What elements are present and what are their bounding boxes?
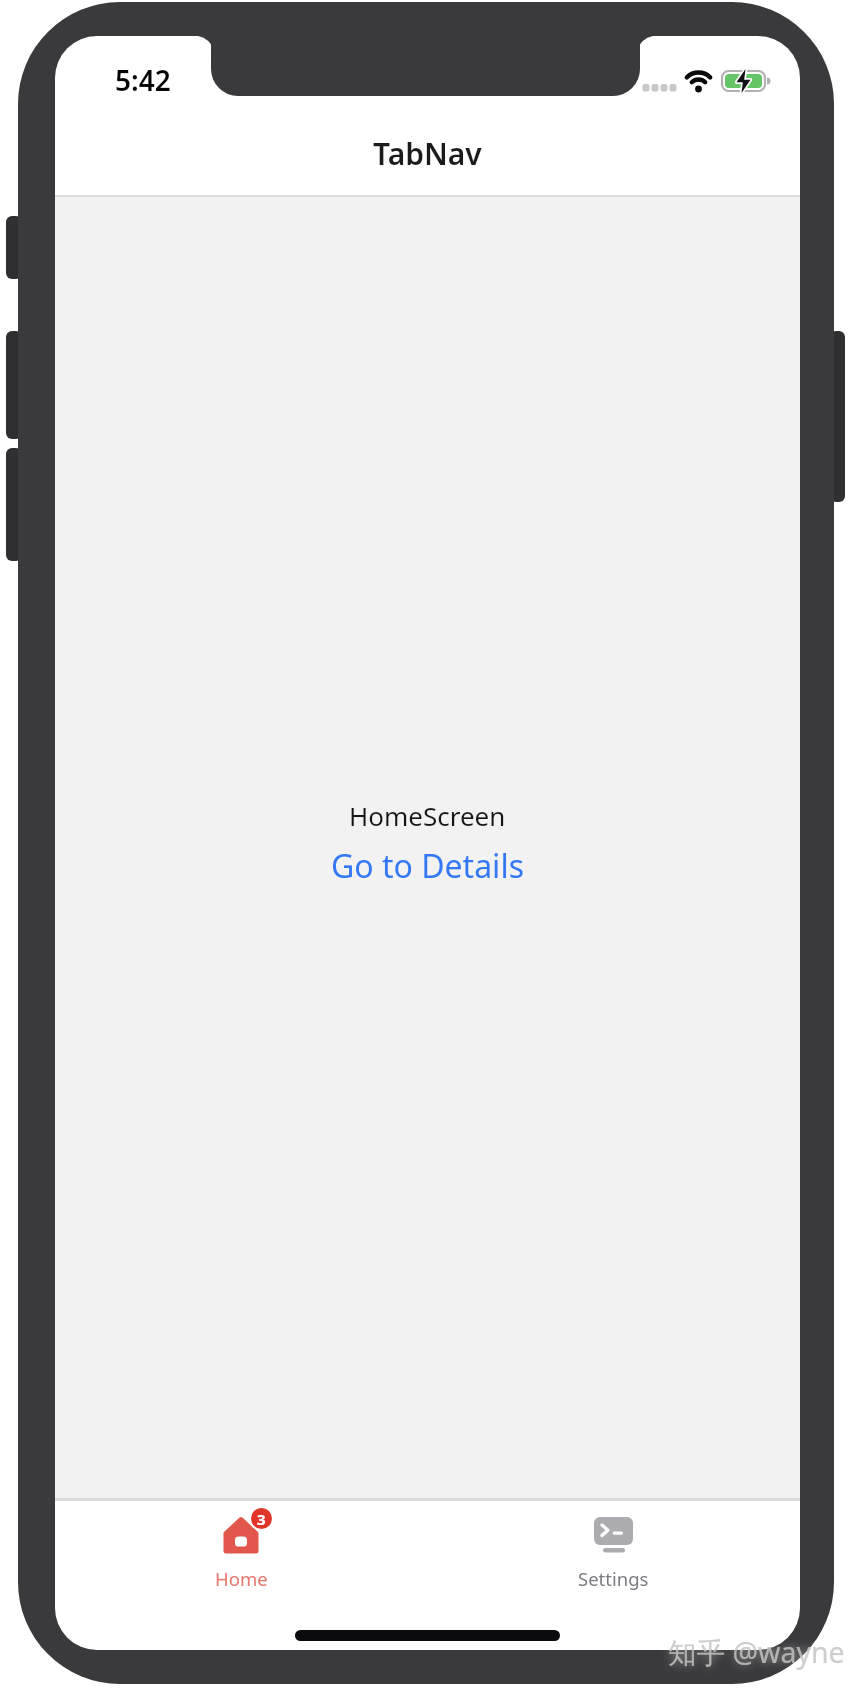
staticText: TabNav <box>373 133 482 169</box>
staticText: 3 <box>257 1509 266 1529</box>
staticText: Go to Details <box>331 844 524 888</box>
button[interactable]: Home <box>55 1501 427 1591</box>
staticText: 5:42 <box>115 61 171 99</box>
staticText: Settings <box>578 1566 649 1591</box>
staticText: HomeScreen <box>349 798 506 833</box>
button[interactable]: Settings <box>427 1501 800 1591</box>
staticText: 知乎 @wayne <box>668 1633 845 1672</box>
staticText: Home <box>215 1566 268 1591</box>
button[interactable]: Go to Details <box>305 842 550 890</box>
